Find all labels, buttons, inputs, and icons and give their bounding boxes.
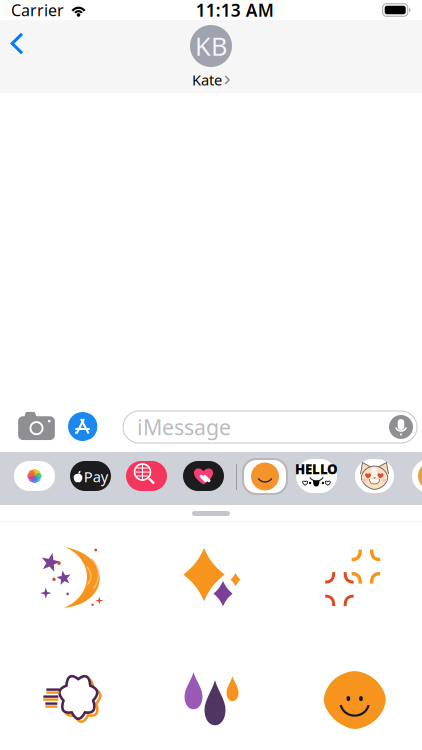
button[interactable]: Burst sticker [281,522,422,634]
button[interactable]: KB [190,25,232,89]
staticText: Carrier [11,0,64,21]
button[interactable]: Moon sticker [0,522,141,634]
staticText: 11:13 AM [196,0,274,21]
button[interactable]: More stickers [412,459,422,493]
button[interactable]: Apple Pay [70,461,111,491]
staticText: iMessage [137,413,231,441]
button[interactable]: Apps [62,406,106,447]
button[interactable]: Smiley sticker [281,634,422,746]
button[interactable]: Photos [14,461,55,491]
button[interactable]: Drops sticker [141,634,281,746]
button[interactable]: Cat stickers [355,459,394,493]
staticText: Pay [84,467,108,486]
staticText: HELLO [295,460,338,478]
staticText: Kate [192,70,222,89]
staticText: KB [195,29,227,63]
button[interactable]: Image Search [126,461,167,491]
button[interactable]: Dictate [389,415,413,439]
button[interactable]: Cloud sticker [0,634,141,746]
button[interactable]: Digital Touch [183,461,224,491]
button[interactable]: Back [0,20,36,63]
button[interactable]: Camera [12,406,61,446]
button[interactable]: Hello stickers [296,459,337,493]
button[interactable]: Sparkle sticker [141,522,281,634]
button[interactable]: Stickers [242,458,288,495]
